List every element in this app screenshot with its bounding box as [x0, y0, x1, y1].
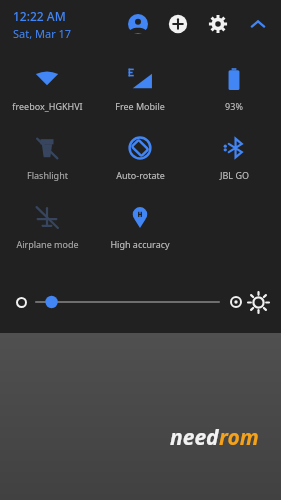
button[interactable]: JBL GO	[190, 131, 278, 183]
staticText: High accuracy	[110, 238, 170, 250]
staticText: Auto-rotate	[116, 169, 165, 181]
button[interactable]: Brightness	[36, 291, 219, 313]
button[interactable]: Collapse	[245, 11, 271, 37]
button[interactable]: freebox_HGKHVI	[3, 62, 91, 114]
staticText: Free Mobile	[115, 100, 165, 112]
button[interactable]: High accuracy	[96, 200, 184, 252]
staticText: 12:22 AM	[13, 8, 66, 24]
staticText: Sat, Mar 17	[13, 26, 72, 41]
staticText: need	[170, 423, 219, 452]
staticText: freebox_HGKHVI	[12, 100, 83, 112]
button[interactable]: 12:22 AM	[13, 8, 72, 41]
button[interactable]: Brightness settings	[247, 291, 269, 313]
staticText: JBL GO	[220, 169, 249, 181]
button[interactable]: Flashlight	[3, 131, 91, 183]
button[interactable]: Minimum brightness	[12, 293, 30, 311]
button[interactable]: User	[125, 11, 151, 37]
staticText: rom	[219, 423, 259, 452]
button[interactable]: Auto-rotate	[96, 131, 184, 183]
staticText: Airplane mode	[16, 238, 79, 250]
button[interactable]: Settings	[205, 11, 231, 37]
button[interactable]: Auto brightness	[227, 293, 245, 311]
staticText: 93%	[225, 100, 243, 112]
button[interactable]: Add user	[165, 11, 191, 37]
button[interactable]: 93%	[190, 62, 278, 114]
button[interactable]: Free Mobile	[96, 62, 184, 114]
staticText: Flashlight	[27, 169, 68, 181]
button[interactable]: Airplane mode	[3, 200, 91, 252]
